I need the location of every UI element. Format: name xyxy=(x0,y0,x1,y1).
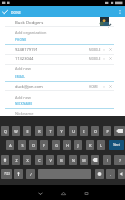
staticText: ? xyxy=(119,158,121,163)
button[interactable]: Shift xyxy=(1,155,9,165)
staticText: E xyxy=(26,129,29,134)
button[interactable]: . xyxy=(106,169,115,179)
button[interactable]: O xyxy=(91,126,99,136)
staticText: EMAIL xyxy=(15,75,25,79)
button[interactable]: X xyxy=(23,155,31,165)
staticText: K xyxy=(89,143,92,148)
button[interactable]: I xyxy=(80,126,88,136)
staticText: / xyxy=(30,172,32,177)
button[interactable]: Emoji xyxy=(95,169,104,179)
button[interactable]: Backspace xyxy=(91,155,99,165)
button[interactable]: 11323044 xyxy=(5,54,114,63)
button[interactable]: Enter xyxy=(118,169,125,179)
button[interactable]: N xyxy=(69,155,77,165)
staticText: Add new xyxy=(15,95,31,100)
staticText: Add organization xyxy=(15,30,47,35)
staticText: A xyxy=(9,143,12,148)
button[interactable]: B xyxy=(57,155,65,165)
button[interactable]: W xyxy=(12,126,20,136)
staticText: T xyxy=(49,129,52,134)
button[interactable]: A xyxy=(6,140,14,150)
staticText: duck@jon.com xyxy=(15,84,43,89)
button[interactable]: Recent apps xyxy=(77,186,95,200)
button[interactable]: L xyxy=(97,140,105,150)
button[interactable]: ?123 xyxy=(1,169,12,179)
button[interactable]: S xyxy=(18,140,26,150)
button[interactable]: E xyxy=(23,126,31,136)
button[interactable]: Back xyxy=(31,186,49,200)
button[interactable]: ! xyxy=(103,155,111,165)
button[interactable]: / xyxy=(26,169,35,179)
button[interactable]: Backspace xyxy=(114,126,125,136)
staticText: D xyxy=(32,143,35,148)
button[interactable]: H xyxy=(63,140,71,150)
button[interactable]: C xyxy=(35,155,43,165)
button[interactable]: D xyxy=(29,140,37,150)
staticText: S xyxy=(21,143,24,148)
staticText: Buck Dodgers xyxy=(15,19,44,25)
staticText: PHONE xyxy=(15,38,27,42)
staticText: 11323044 xyxy=(15,56,34,61)
staticText: Next xyxy=(113,143,120,147)
staticText: H xyxy=(66,143,69,148)
button[interactable]: F xyxy=(40,140,48,150)
staticText: . xyxy=(110,172,111,177)
staticText: DONE xyxy=(11,10,21,14)
button[interactable]: P xyxy=(103,126,111,136)
staticText: P xyxy=(106,129,109,134)
staticText: MOBILE xyxy=(89,48,101,52)
staticText: 9248179191 xyxy=(15,47,38,52)
staticText: O xyxy=(94,129,97,134)
button[interactable]: Voice input xyxy=(14,169,23,179)
staticText: B xyxy=(60,158,63,163)
button[interactable]: T xyxy=(46,126,54,136)
staticText: C xyxy=(38,158,41,163)
staticText: L xyxy=(100,143,102,148)
staticText: NICKNAME xyxy=(15,102,33,106)
button[interactable]: More options xyxy=(114,6,125,17)
button[interactable]: 9248179191 xyxy=(5,45,114,54)
button[interactable]: DONE xyxy=(0,8,25,16)
staticText: V xyxy=(49,158,52,163)
staticText: G xyxy=(55,143,58,148)
staticText: Z xyxy=(15,158,18,163)
button[interactable]: K xyxy=(86,140,94,150)
staticText: MOBILE xyxy=(89,57,101,61)
staticText: Add new xyxy=(15,66,31,71)
staticText: W xyxy=(14,129,18,134)
button[interactable]: U xyxy=(69,126,77,136)
staticText: N xyxy=(72,158,75,163)
button[interactable]: J xyxy=(74,140,82,150)
staticText: HOME xyxy=(89,85,99,89)
staticText: ?123 xyxy=(4,172,10,176)
staticText: Q xyxy=(4,129,7,134)
button[interactable]: Y xyxy=(57,126,65,136)
staticText: ! xyxy=(107,158,108,163)
button[interactable]: Home xyxy=(54,186,72,200)
button[interactable]: R xyxy=(35,126,43,136)
button[interactable]: Z xyxy=(12,155,20,165)
button[interactable]: Q xyxy=(1,126,9,136)
button[interactable]: ? xyxy=(114,155,125,165)
button[interactable]: M xyxy=(80,155,88,165)
staticText: Y xyxy=(60,129,63,134)
button[interactable]: G xyxy=(52,140,60,150)
staticText: X xyxy=(26,158,29,163)
staticText: U xyxy=(72,129,75,134)
staticText: R xyxy=(38,129,41,134)
staticText: Nickname xyxy=(15,111,34,116)
staticText: I xyxy=(83,129,85,134)
button[interactable]: V xyxy=(46,155,54,165)
staticText: F xyxy=(43,143,45,148)
button[interactable]: Contact photo xyxy=(100,17,109,26)
staticText: M xyxy=(82,158,86,163)
button[interactable]: Next xyxy=(109,140,124,150)
button[interactable]: duck@jon.com xyxy=(5,82,114,91)
staticText: J xyxy=(77,143,79,148)
